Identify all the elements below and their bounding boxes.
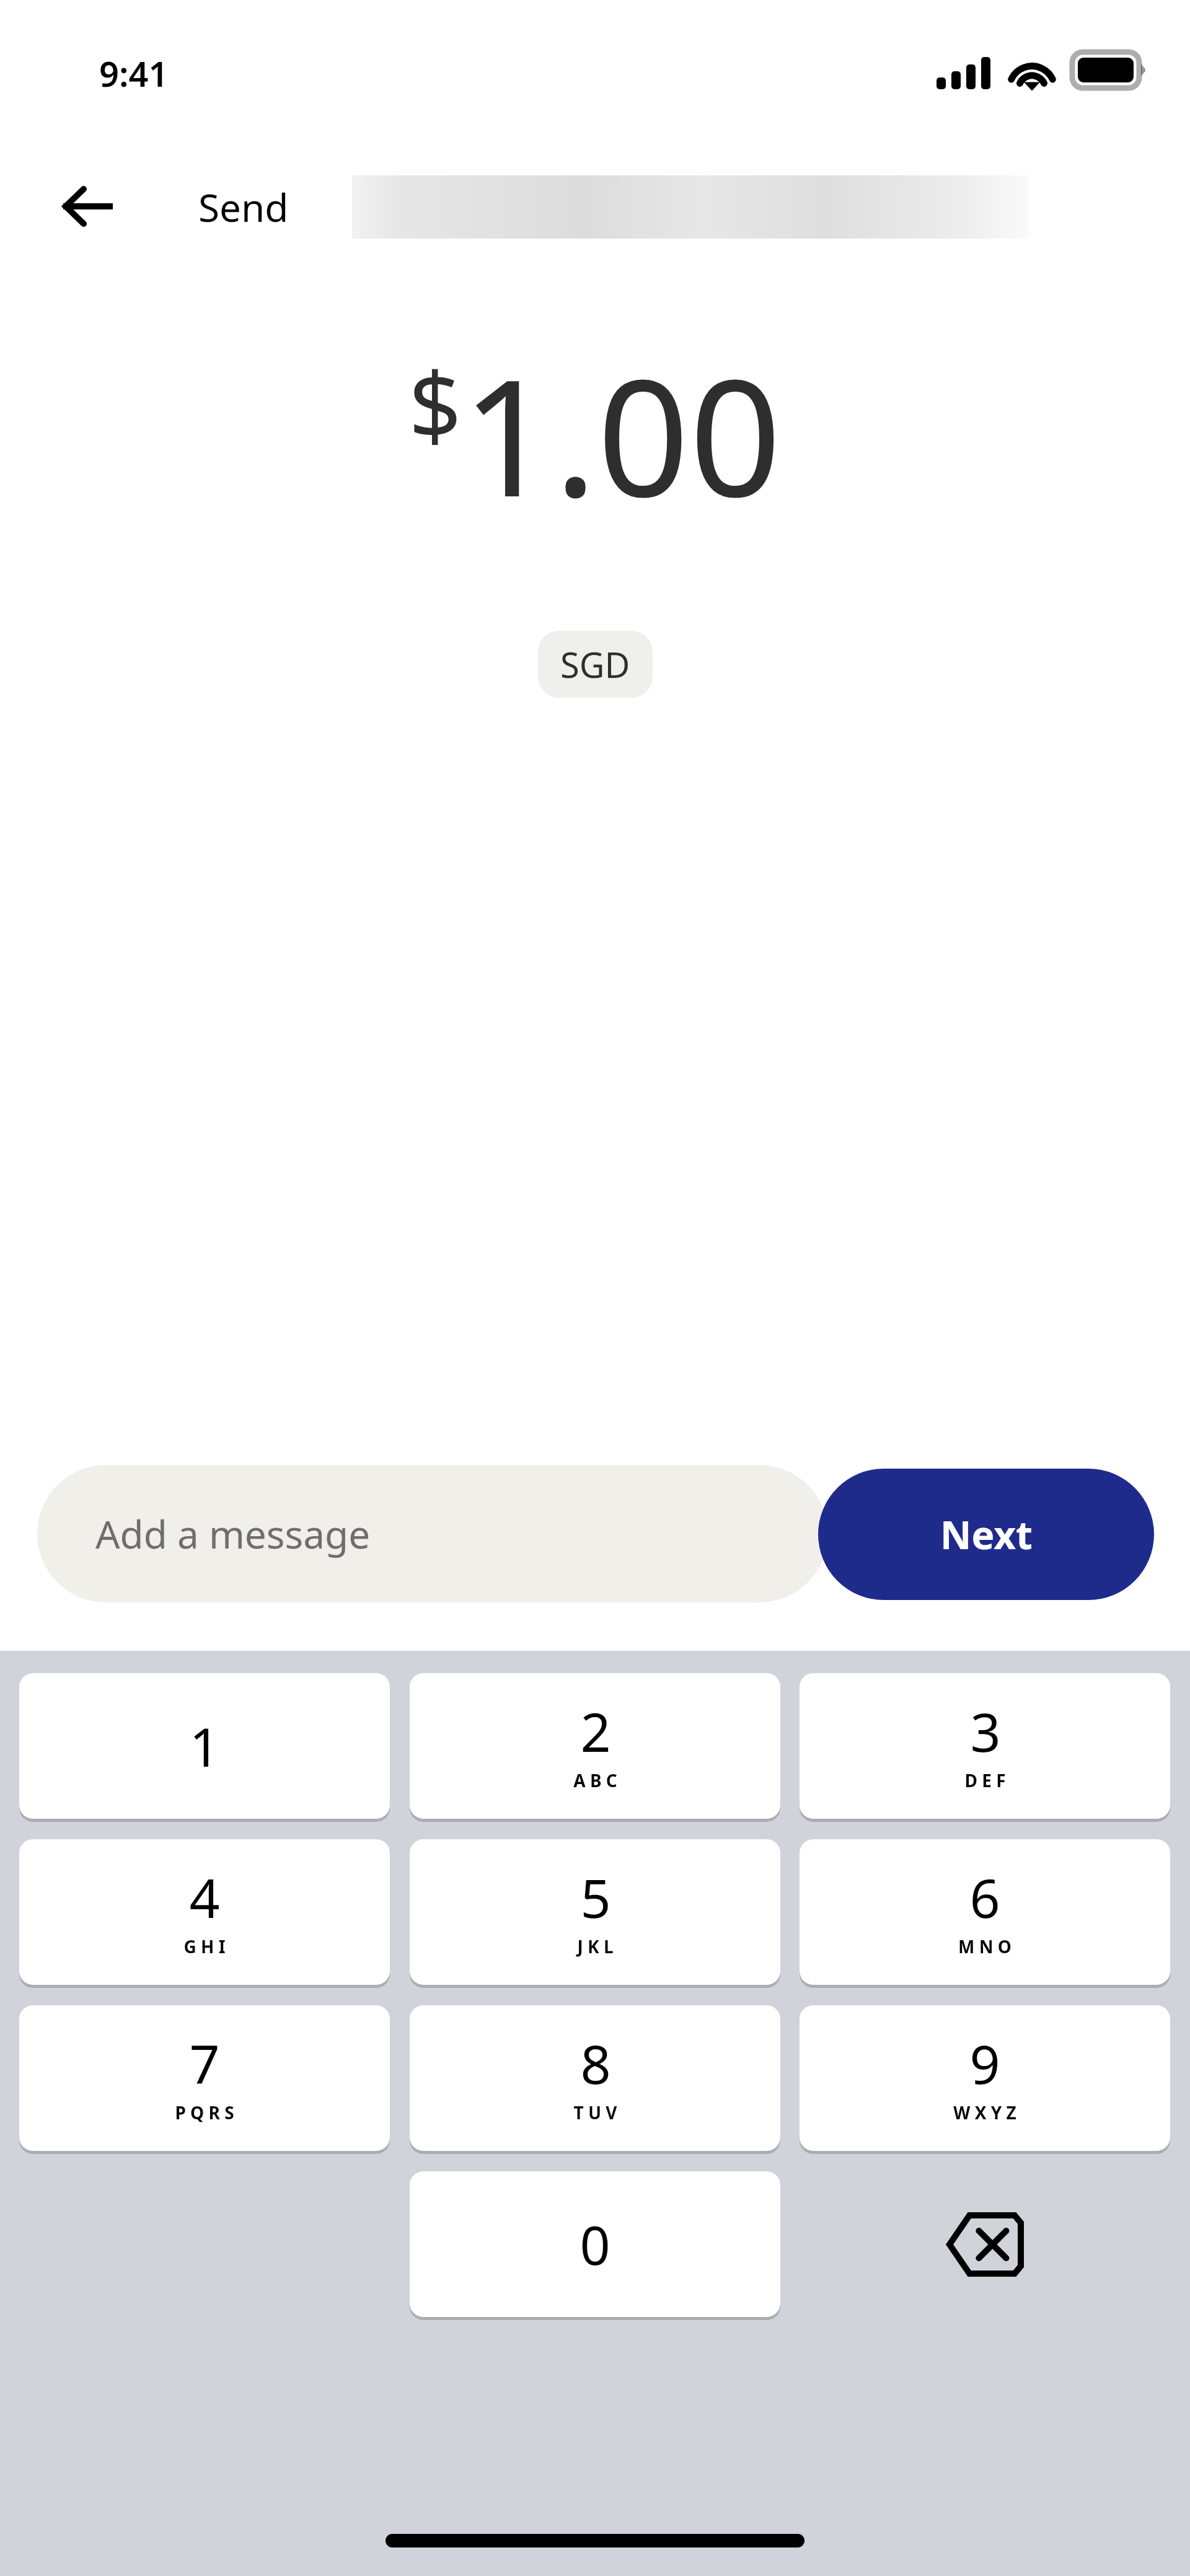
button[interactable]: Back (48, 167, 126, 245)
staticText: 3 (970, 1695, 1001, 1767)
button[interactable]: 3 (800, 1673, 1170, 1819)
staticText: $ (408, 340, 462, 467)
button[interactable]: 7 (19, 2005, 390, 2151)
button[interactable]: 4 (19, 1839, 390, 1985)
staticText: 0 (580, 2208, 610, 2280)
button[interactable]: Add a message (37, 1465, 828, 1602)
staticText: Add a message (95, 1508, 371, 1560)
button[interactable]: Next (818, 1469, 1154, 1600)
staticText: 6 (969, 1861, 1000, 1933)
staticText: 1.00 (462, 324, 782, 543)
button[interactable]: 2 (410, 1673, 780, 1819)
staticText: Send (198, 181, 289, 233)
staticText: Next (940, 1508, 1033, 1560)
staticText: J K L (577, 1935, 614, 1958)
button[interactable]: SGD (538, 631, 653, 698)
staticText: 7 (189, 2027, 220, 2099)
button[interactable]: 5 (410, 1839, 780, 1985)
staticText: 5 (580, 1861, 611, 1933)
staticText: W X Y Z (953, 2101, 1016, 2124)
staticText: D E F (964, 1769, 1006, 1792)
button[interactable]: 0 (410, 2171, 780, 2317)
button[interactable]: 6 (800, 1839, 1170, 1985)
button[interactable]: 9 (800, 2005, 1170, 2151)
staticText: 2 (580, 1695, 611, 1767)
staticText: 4 (189, 1861, 220, 1933)
staticText: G H I (183, 1935, 226, 1958)
staticText: 8 (580, 2027, 611, 2099)
staticText: M N O (958, 1935, 1011, 1958)
button[interactable]: 1 (19, 1673, 390, 1819)
staticText: 9 (969, 2027, 1000, 2099)
button[interactable]: Backspace (800, 2171, 1170, 2317)
staticText: 9:41 (99, 50, 169, 97)
staticText: SGD (560, 641, 630, 688)
staticText: T U V (573, 2101, 617, 2124)
staticText: 1 (189, 1710, 220, 1782)
staticText: A B C (573, 1769, 617, 1792)
button[interactable]: 8 (410, 2005, 780, 2151)
staticText: P Q R S (175, 2101, 234, 2124)
